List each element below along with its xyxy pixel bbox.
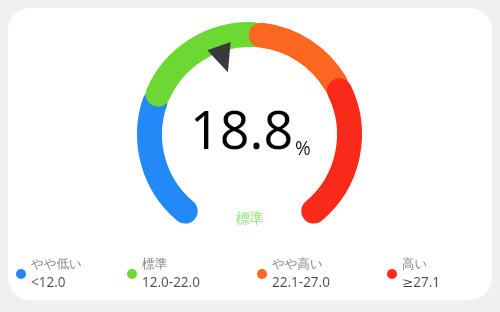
staticText: 12.0-22.0: [142, 273, 200, 291]
staticText: ≥27.1: [402, 273, 441, 291]
staticText: 高い: [402, 256, 428, 272]
staticText: <12.0: [31, 273, 66, 291]
staticText: やや低い: [31, 256, 82, 272]
staticText: やや高い: [272, 256, 323, 272]
button[interactable]: 高い: [387, 254, 488, 293]
button[interactable]: やや高い: [257, 254, 387, 293]
staticText: 標準: [236, 210, 264, 228]
button[interactable]: 標準: [127, 254, 257, 293]
staticText: 標準: [142, 256, 167, 272]
button[interactable]: やや低い: [16, 254, 127, 293]
staticText: 22.1-27.0: [272, 273, 330, 291]
staticText: 18.8: [190, 93, 294, 164]
staticText: %: [295, 135, 311, 161]
